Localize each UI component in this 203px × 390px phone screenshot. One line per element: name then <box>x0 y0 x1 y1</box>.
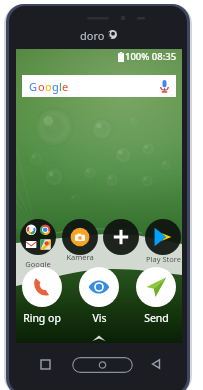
staticText: l <box>59 79 62 94</box>
staticText: Google <box>25 259 51 269</box>
staticText: Ring op <box>23 311 61 325</box>
button[interactable] <box>56 218 104 252</box>
other: Google <box>20 219 56 255</box>
button[interactable] <box>97 218 145 252</box>
staticText: Vis <box>92 311 107 325</box>
button[interactable]: Recent apps <box>34 354 56 374</box>
staticText: o <box>38 79 45 94</box>
staticText: doro <box>80 28 105 40</box>
staticText: G <box>29 79 38 94</box>
other: Play Store <box>145 219 181 255</box>
button[interactable]: Back <box>145 354 167 374</box>
staticText: Send <box>144 311 169 325</box>
button[interactable]: Ring op <box>16 267 68 325</box>
other: Voice search <box>160 80 169 93</box>
staticText: o <box>45 79 52 94</box>
button[interactable]: Send <box>130 267 182 325</box>
staticText: Kamera <box>66 252 94 262</box>
staticText: Play Store <box>146 254 181 264</box>
other: Add <box>103 219 139 255</box>
button[interactable] <box>16 218 62 252</box>
other: Kamera <box>62 219 98 255</box>
button[interactable] <box>139 218 182 252</box>
button[interactable]: Vis <box>73 267 125 325</box>
button[interactable]: G <box>22 75 176 97</box>
staticText: 100% 08:35 <box>125 50 177 63</box>
staticText: e <box>62 79 69 94</box>
staticText: g <box>52 79 59 94</box>
button[interactable]: Home <box>72 357 133 373</box>
